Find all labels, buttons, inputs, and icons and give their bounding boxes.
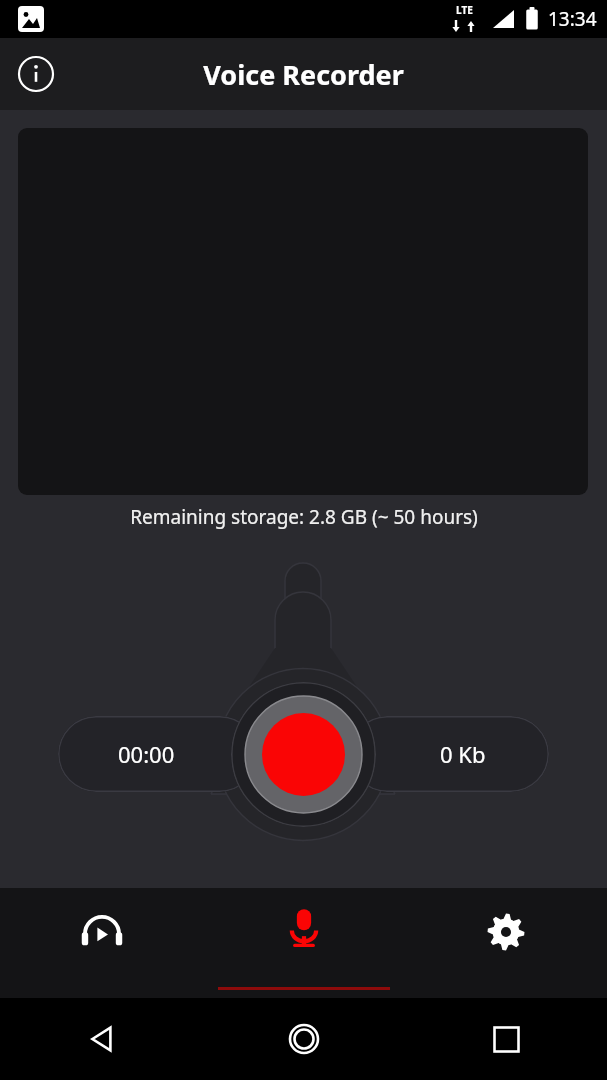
button[interactable]: Back xyxy=(0,998,203,1080)
button[interactable]: Recordings xyxy=(0,888,203,998)
staticText: LTE xyxy=(456,3,473,17)
staticText: 13:34 xyxy=(548,6,597,32)
staticText: 00:00 xyxy=(118,739,175,769)
button[interactable]: 00:00 xyxy=(58,716,258,792)
staticText: 0 Kb xyxy=(440,739,486,769)
staticText: Remaining storage: 2.8 GB (~ 50 hours) xyxy=(130,504,478,530)
button[interactable]: Recorder xyxy=(203,888,405,998)
staticText: Voice Recorder xyxy=(203,56,404,93)
button[interactable]: Start recording xyxy=(231,682,376,827)
button[interactable]: Settings xyxy=(405,888,607,998)
button[interactable]: 0 Kb xyxy=(349,716,549,792)
button[interactable]: About xyxy=(10,48,62,100)
button[interactable]: Home xyxy=(203,998,405,1080)
button[interactable]: Recent apps xyxy=(405,998,607,1080)
